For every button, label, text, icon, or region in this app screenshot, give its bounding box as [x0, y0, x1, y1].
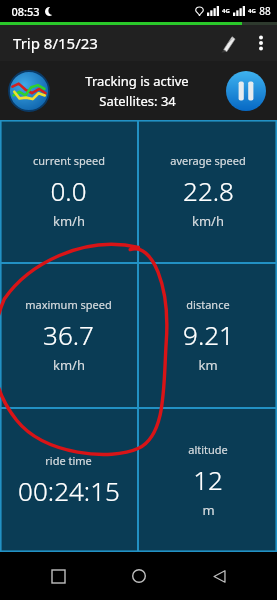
- button[interactable]: Recent apps: [35, 553, 81, 599]
- staticText: Satellites: 34: [99, 92, 176, 110]
- button[interactable]: Edit trip name: [209, 25, 245, 61]
- staticText: Trip 8/15/23: [13, 33, 98, 53]
- button[interactable]: current speed: [0, 120, 137, 262]
- staticText: Tracking is active: [85, 72, 189, 90]
- staticText: km/h: [53, 212, 85, 230]
- button[interactable]: distance: [139, 264, 277, 407]
- staticText: km/h: [53, 356, 85, 374]
- button[interactable]: maximum speed: [0, 264, 137, 407]
- staticText: 08:53: [11, 4, 40, 19]
- staticText: maximum speed: [25, 297, 112, 312]
- staticText: average speed: [170, 153, 246, 168]
- staticText: 0.0: [50, 173, 87, 208]
- button[interactable]: Tracking is active: [0, 61, 277, 120]
- button[interactable]: Back: [196, 553, 242, 599]
- button[interactable]: ride time: [0, 409, 137, 552]
- staticText: 9.21: [183, 317, 234, 352]
- staticText: km/h: [192, 212, 224, 230]
- button[interactable]: Pause tracking: [225, 70, 267, 112]
- staticText: 00:24:15: [18, 473, 120, 508]
- button[interactable]: altitude: [139, 409, 277, 552]
- staticText: ride time: [45, 453, 92, 468]
- button[interactable]: average speed: [139, 120, 277, 262]
- staticText: 12: [193, 462, 223, 497]
- staticText: distance: [186, 297, 230, 312]
- staticText: 4G: [248, 7, 256, 15]
- staticText: m: [202, 501, 215, 519]
- button[interactable]: More options: [245, 27, 277, 59]
- staticText: 22.8: [183, 173, 234, 208]
- staticText: 36.7: [43, 317, 94, 352]
- staticText: 4G: [222, 7, 230, 15]
- button[interactable]: Home: [116, 553, 162, 599]
- staticText: altitude: [188, 442, 228, 457]
- staticText: current speed: [33, 153, 105, 168]
- staticText: 88: [259, 4, 271, 18]
- staticText: km: [198, 356, 218, 374]
